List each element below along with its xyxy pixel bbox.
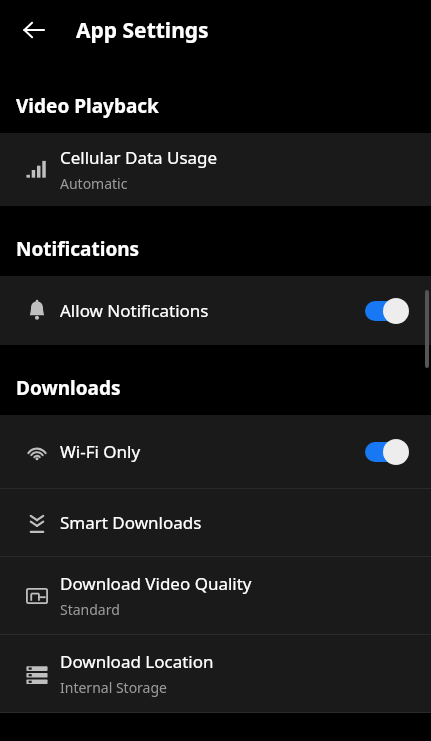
button[interactable]: Wi-Fi Only: [0, 415, 431, 488]
button[interactable]: Download Video Quality: [0, 557, 431, 634]
button[interactable]: Allow Notifications: [0, 276, 431, 345]
staticText: Download Location: [60, 650, 214, 673]
staticText: Standard: [60, 600, 120, 619]
staticText: Downloads: [16, 375, 121, 401]
staticText: Automatic: [60, 174, 128, 193]
staticText: Wi-Fi Only: [60, 440, 141, 463]
button[interactable]: Back: [10, 6, 58, 54]
staticText: App Settings: [76, 16, 209, 45]
button[interactable]: Cellular Data Usage: [0, 133, 431, 206]
button[interactable]: Toggle: [361, 296, 413, 326]
staticText: Cellular Data Usage: [60, 146, 218, 169]
staticText: Video Playback: [16, 93, 159, 119]
staticText: Allow Notifications: [60, 299, 209, 322]
staticText: Download Video Quality: [60, 572, 252, 595]
staticText: Internal Storage: [60, 678, 167, 697]
staticText: Smart Downloads: [60, 511, 202, 534]
button[interactable]: Download Location: [0, 635, 431, 712]
staticText: Notifications: [16, 236, 140, 262]
button[interactable]: Smart Downloads: [0, 489, 431, 556]
button[interactable]: Toggle: [361, 437, 413, 467]
